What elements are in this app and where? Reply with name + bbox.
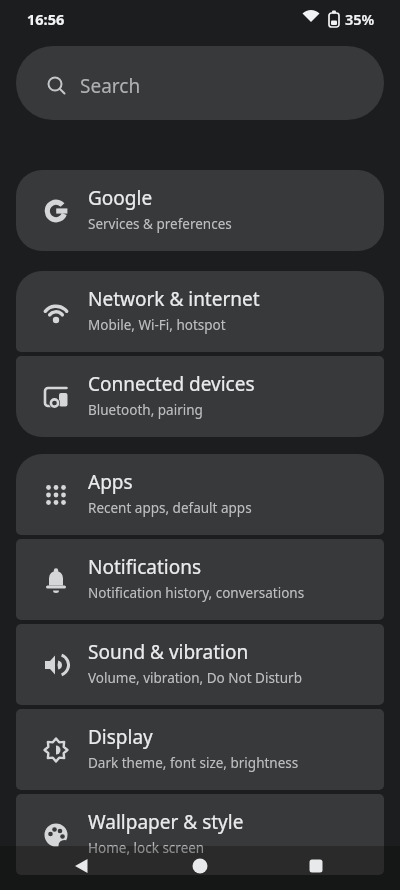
staticText: Connected devices	[88, 371, 255, 397]
button[interactable]	[174, 846, 226, 886]
button[interactable]: Display	[16, 709, 384, 790]
button[interactable]: Connected devices	[16, 356, 384, 437]
button[interactable]: Apps	[16, 454, 384, 535]
staticText: Volume, vibration, Do Not Disturb	[88, 669, 302, 687]
button[interactable]: Search	[16, 46, 384, 120]
button[interactable]: Notifications	[16, 539, 384, 620]
staticText: Recent apps, default apps	[88, 499, 252, 517]
button[interactable]	[56, 846, 108, 886]
staticText: Notification history, conversations	[88, 584, 305, 602]
staticText: Bluetooth, pairing	[88, 401, 203, 419]
staticText: Services & preferences	[88, 215, 232, 233]
button[interactable]: Google	[16, 170, 384, 251]
button[interactable]: Wallpaper & style	[16, 794, 384, 875]
staticText: Search	[80, 73, 141, 99]
staticText: Dark theme, font size, brightness	[88, 754, 299, 772]
staticText: 16:56	[27, 9, 65, 29]
button[interactable]	[290, 846, 342, 886]
staticText: Wallpaper & style	[88, 809, 244, 835]
staticText: Notifications	[88, 554, 202, 580]
button[interactable]: Sound & vibration	[16, 624, 384, 705]
staticText: Sound & vibration	[88, 639, 249, 665]
staticText: Google	[88, 185, 153, 211]
button[interactable]: Network & internet	[16, 271, 384, 352]
staticText: Display	[88, 724, 153, 750]
staticText: 35%	[345, 9, 375, 29]
staticText: Network & internet	[88, 286, 260, 312]
staticText: Mobile, Wi-Fi, hotspot	[88, 316, 226, 334]
staticText: Apps	[88, 469, 133, 495]
staticText: Home, lock screen	[88, 839, 205, 857]
